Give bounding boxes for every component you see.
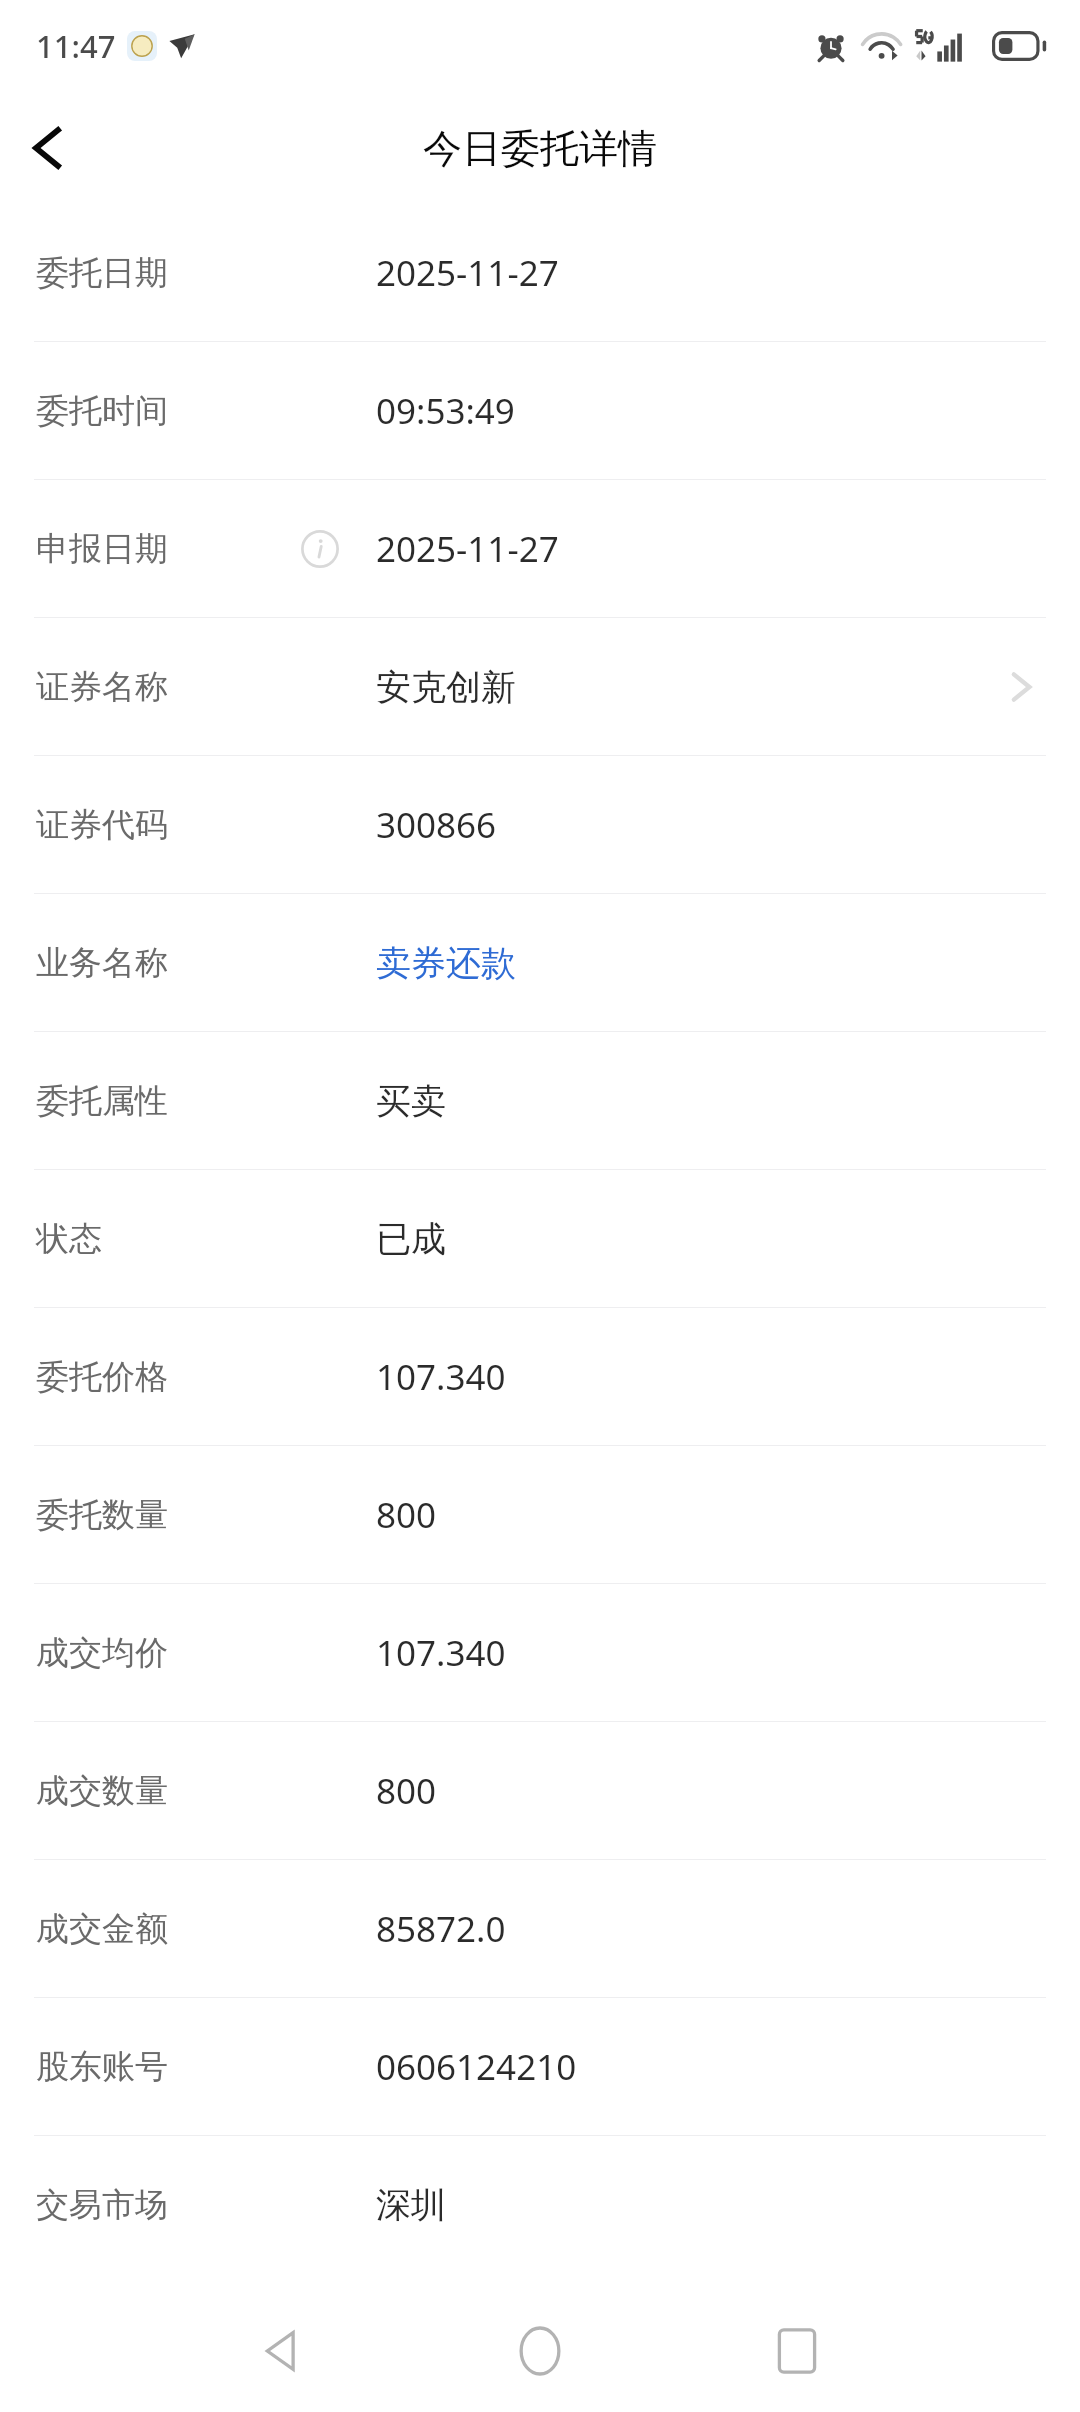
staticText: 成交数量 <box>36 1770 168 1812</box>
staticText: 成交均价 <box>36 1632 168 1674</box>
staticText: 委托时间 <box>36 390 168 432</box>
staticText: 800 <box>376 1491 437 1539</box>
staticText: 证券代码 <box>36 804 168 846</box>
staticText: 股东账号 <box>36 2046 168 2088</box>
staticText: 09:53:49 <box>376 387 515 435</box>
staticText: 委托数量 <box>36 1494 168 1536</box>
staticText: 已成 <box>376 1217 446 1261</box>
staticText: 状态 <box>36 1218 102 1260</box>
staticText: 业务名称 <box>36 942 168 984</box>
staticText: 证券名称 <box>36 666 168 708</box>
staticText: 申报日期 <box>36 528 168 570</box>
button[interactable]: 证券名称 <box>0 618 1080 755</box>
staticText: 今日委托详情 <box>423 124 657 173</box>
button[interactable]: Information <box>292 521 348 577</box>
staticText: 0606124210 <box>376 2043 577 2091</box>
staticText: 安克创新 <box>376 665 516 709</box>
staticText: 交易市场 <box>36 2184 168 2226</box>
staticText: 委托日期 <box>36 252 168 294</box>
button[interactable]: Back <box>4 103 94 193</box>
staticText: 2025-11-27 <box>376 249 559 297</box>
staticText: 买卖 <box>376 1079 446 1123</box>
staticText: 委托属性 <box>36 1080 168 1122</box>
staticText: 800 <box>376 1767 437 1815</box>
button[interactable]: Recent apps <box>754 2308 840 2394</box>
button[interactable]: Home <box>497 2308 583 2394</box>
staticText: 300866 <box>376 801 497 849</box>
staticText: 委托价格 <box>36 1356 168 1398</box>
staticText: 107.340 <box>376 1353 506 1401</box>
staticText: 11:47 <box>36 25 116 67</box>
staticText: 107.340 <box>376 1629 506 1677</box>
staticText: 2025-11-27 <box>376 525 559 573</box>
staticText: 成交金额 <box>36 1908 168 1950</box>
button[interactable]: Back <box>240 2308 326 2394</box>
staticText: 深圳 <box>376 2183 446 2227</box>
staticText: 卖券还款 <box>376 941 516 985</box>
staticText: 85872.0 <box>376 1905 506 1953</box>
